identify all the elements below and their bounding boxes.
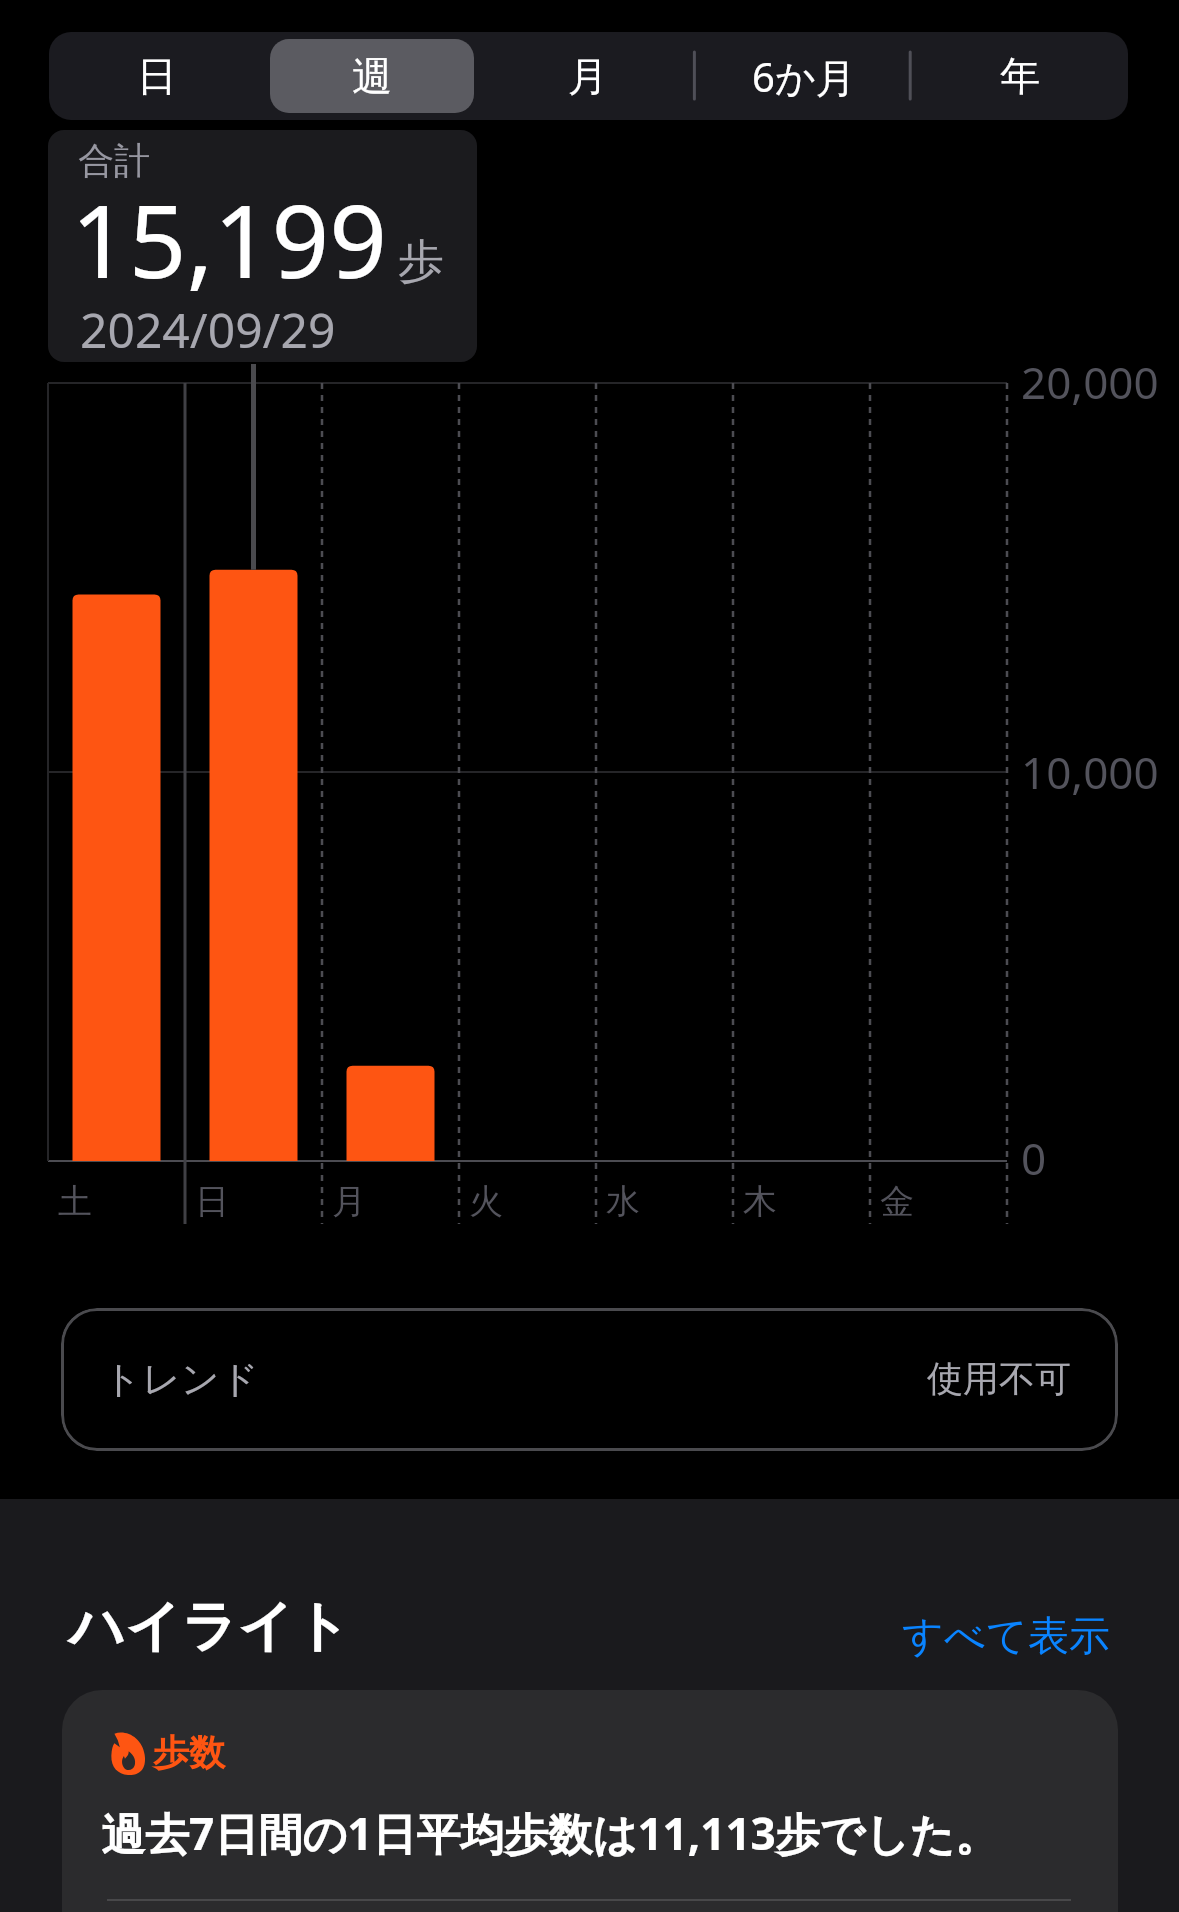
staticText: 歩数 [153, 1730, 225, 1775]
staticText: 10,000 [1021, 742, 1159, 802]
button[interactable]: すべて表示 [902, 1601, 1110, 1653]
button[interactable]: 歩数 [62, 1690, 1118, 1912]
button[interactable]: 日 [55, 39, 258, 113]
staticText: 週 [352, 51, 392, 101]
staticText: 20,000 [1021, 352, 1159, 412]
staticText: 使用不可 [927, 1356, 1071, 1401]
staticText: 過去7日間の1日平均歩数は11,113歩でした。 [101, 1803, 999, 1863]
staticText: 月 [332, 1180, 366, 1223]
button[interactable]: 月 [486, 39, 690, 113]
staticText: 6か月 [752, 49, 856, 104]
staticText: 0 [1021, 1128, 1047, 1188]
staticText: 15,199 [71, 170, 387, 308]
staticText: 月 [568, 51, 608, 101]
staticText: 火 [469, 1180, 503, 1223]
button[interactable]: 年 [918, 39, 1122, 113]
staticText: 年 [1000, 51, 1040, 101]
staticText: トレンド [103, 1355, 259, 1403]
staticText: 日 [137, 51, 177, 101]
staticText: 金 [880, 1180, 914, 1223]
staticText: 合計 [78, 138, 150, 183]
staticText: すべて表示 [902, 1611, 1110, 1663]
button[interactable]: トレンド [61, 1308, 1118, 1451]
staticText: 歩 [398, 233, 444, 291]
staticText: 2024/09/29 [80, 297, 336, 362]
button[interactable]: 6か月 [702, 39, 906, 113]
staticText: 水 [606, 1180, 640, 1223]
other: 歩数 [111, 1731, 145, 1775]
button[interactable]: 合計 [48, 130, 477, 362]
staticText: ハイライト [69, 1592, 351, 1661]
staticText: 木 [743, 1180, 777, 1223]
staticText: 土 [58, 1180, 92, 1223]
button[interactable]: 週 [270, 39, 474, 113]
staticText: 日 [195, 1180, 229, 1223]
